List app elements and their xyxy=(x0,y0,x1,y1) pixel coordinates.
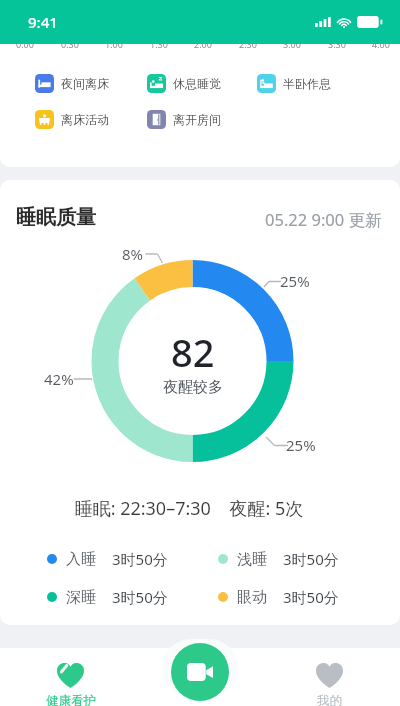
staticText: 2:00 xyxy=(194,38,212,50)
staticText: 入睡 xyxy=(66,550,96,569)
staticText: 健康看护 xyxy=(46,693,96,706)
staticText: 4:00 xyxy=(372,38,390,50)
staticText: 我的 xyxy=(317,693,342,706)
staticText: 0:00 xyxy=(16,38,34,50)
staticText: 离床活动 xyxy=(61,112,109,127)
staticText: 42% xyxy=(44,369,74,389)
staticText: 3:30 xyxy=(328,38,346,50)
staticText: 浅睡 xyxy=(237,550,267,569)
staticText: 0:30 xyxy=(61,38,79,50)
button[interactable]: Record video xyxy=(171,643,229,701)
button[interactable]: 夜间离床 xyxy=(35,74,147,93)
button[interactable]: 健康看护 xyxy=(30,648,111,706)
staticText: 半卧作息 xyxy=(283,76,331,91)
staticText: 1:30 xyxy=(150,38,168,50)
staticText: 9:41 xyxy=(28,12,58,32)
staticText: 25% xyxy=(280,271,310,291)
staticText: 夜间离床 xyxy=(61,76,109,91)
button[interactable]: 我的 xyxy=(289,648,370,706)
staticText: 05.22 9:00 更新 xyxy=(265,208,382,231)
staticText: 睡眠质量 xyxy=(16,205,96,230)
staticText: 离开房间 xyxy=(173,112,221,127)
button[interactable]: 休息睡觉 xyxy=(147,74,257,93)
button[interactable]: 半卧作息 xyxy=(257,74,367,93)
staticText: 8% xyxy=(122,244,144,264)
staticText: 3时50分 xyxy=(283,549,339,569)
button[interactable]: 眼动 xyxy=(218,587,378,607)
staticText: 2:30 xyxy=(239,38,257,50)
staticText: 休息睡觉 xyxy=(173,76,221,91)
staticText: 3时50分 xyxy=(283,587,339,607)
staticText: 1:00 xyxy=(105,38,123,50)
button[interactable]: 入睡 xyxy=(47,549,218,569)
staticText: 夜醒较多 xyxy=(163,378,223,397)
button[interactable]: 深睡 xyxy=(47,587,218,607)
staticText: 3:00 xyxy=(283,38,301,50)
button[interactable]: 浅睡 xyxy=(218,549,378,569)
staticText: 82 xyxy=(171,326,215,378)
staticText: 深睡 xyxy=(66,588,96,607)
staticText: 眼动 xyxy=(237,588,267,607)
button[interactable]: 离开房间 xyxy=(147,110,257,129)
staticText: 3时50分 xyxy=(112,549,168,569)
staticText: 3时50分 xyxy=(112,587,168,607)
button[interactable]: 离床活动 xyxy=(35,110,147,129)
staticText: 25% xyxy=(286,435,316,455)
staticText: 睡眠: 22:30–7:30 夜醒: 5次 xyxy=(0,496,389,521)
